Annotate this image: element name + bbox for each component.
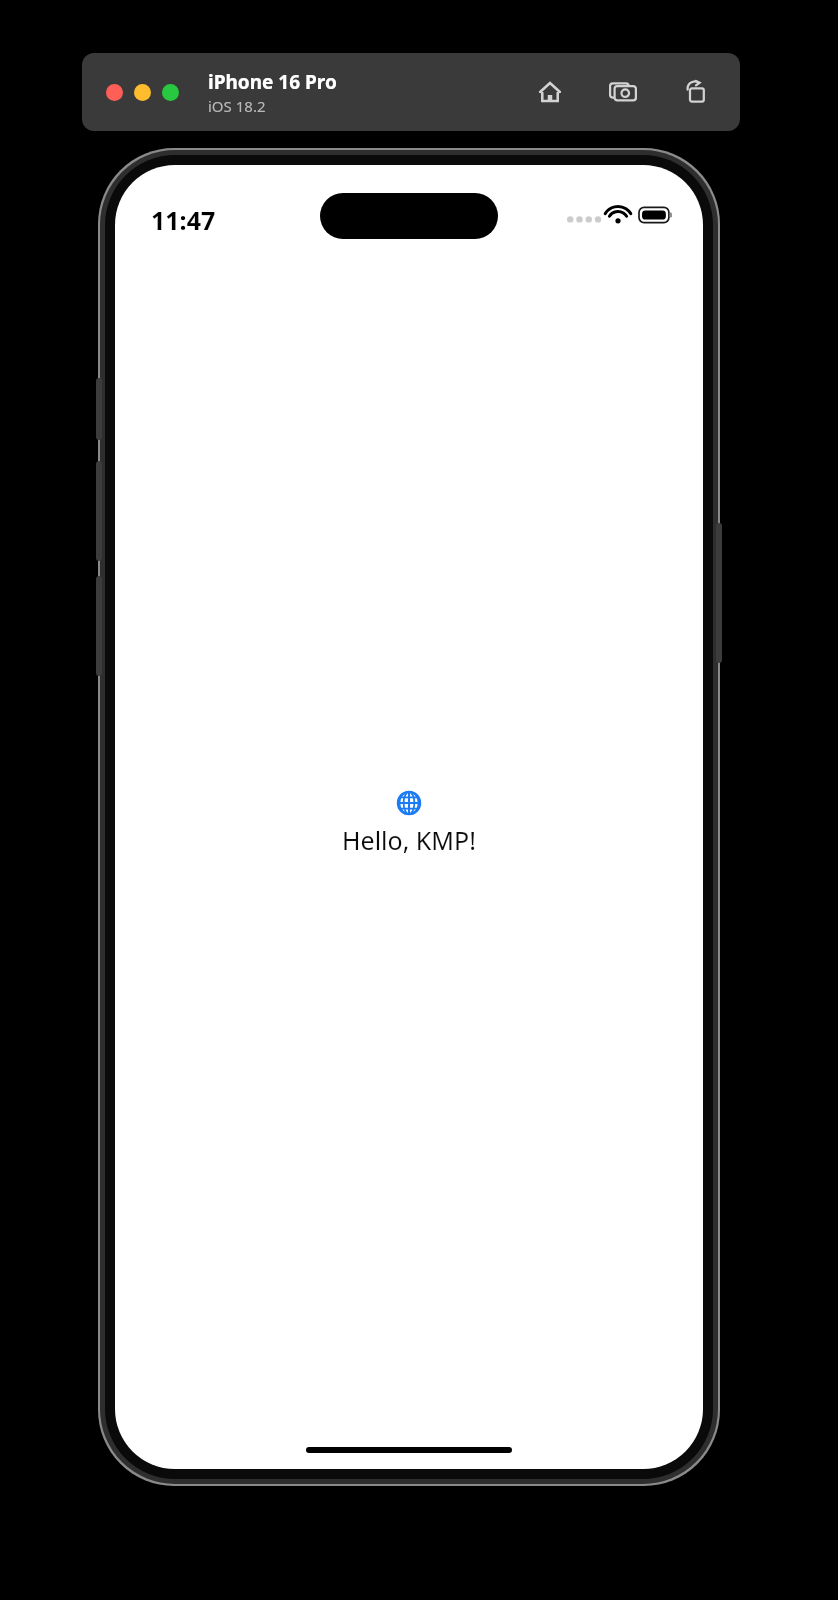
button[interactable]: Power xyxy=(716,523,722,663)
button[interactable]: Action button xyxy=(96,378,102,440)
staticText: 11:47 xyxy=(151,203,216,237)
button[interactable]: Screenshot xyxy=(605,74,641,110)
staticText: Hello, KMP! xyxy=(342,823,476,857)
staticText: iPhone 16 Pro xyxy=(208,69,337,95)
button[interactable]: Rotate xyxy=(678,74,714,110)
button[interactable]: Volume down xyxy=(96,576,102,676)
button[interactable]: Maximize xyxy=(162,84,179,101)
button[interactable]: Home xyxy=(532,74,568,110)
button[interactable]: Volume up xyxy=(96,461,102,561)
button[interactable]: Minimize xyxy=(134,84,151,101)
button[interactable]: Close xyxy=(106,84,123,101)
staticText: iOS 18.2 xyxy=(208,96,266,116)
